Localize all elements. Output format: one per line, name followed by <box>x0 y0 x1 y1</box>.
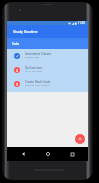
staticText: Tasks <box>12 42 20 46</box>
staticText: Create Flash Cards <box>25 80 51 84</box>
button[interactable]: 2 <box>7 63 88 77</box>
staticText: All 11 Of Them <box>25 69 43 72</box>
staticText: Do Exercises <box>25 66 42 70</box>
button[interactable]: 3 <box>7 77 88 91</box>
staticText: 11:30 <box>78 21 85 25</box>
button[interactable]: Summarize Classes <box>7 49 88 63</box>
staticText: One For Each Subject <box>25 83 50 86</box>
button[interactable]: Tasks <box>7 38 24 49</box>
button[interactable]: Recents <box>64 148 80 160</box>
button[interactable]: Home <box>40 148 56 160</box>
staticText: 3 <box>16 82 18 87</box>
staticText: Summarize Classes <box>25 52 52 56</box>
staticText: Boring Stuff <box>25 55 40 58</box>
staticText: 2 <box>16 68 18 73</box>
button[interactable]: Add task <box>75 134 85 144</box>
staticText: Study Routine <box>13 29 38 34</box>
button[interactable]: Back <box>15 148 31 160</box>
